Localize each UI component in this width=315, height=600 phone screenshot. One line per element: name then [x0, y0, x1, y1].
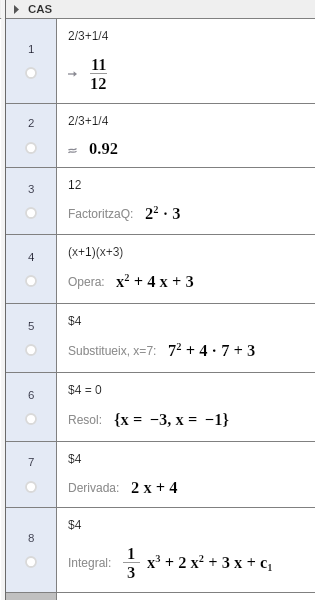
- button[interactable]: 8: [6, 508, 315, 592]
- button[interactable]: 2: [6, 104, 315, 167]
- button[interactable]: 3: [6, 168, 315, 234]
- button[interactable]: 1: [6, 19, 315, 103]
- staticText: CAS: [28, 3, 53, 16]
- button[interactable]: 7: [6, 442, 315, 507]
- staticText: Integral:: [68, 556, 112, 569]
- staticText: 7: [28, 456, 35, 469]
- staticText: $4: [68, 314, 82, 327]
- staticText: 3: [127, 563, 136, 581]
- staticText: 22 · 3: [145, 204, 181, 223]
- staticText: (x+1)(x+3): [68, 245, 124, 258]
- staticText: 3: [28, 183, 35, 196]
- staticText: 5: [28, 320, 35, 333]
- staticText: Resol:: [68, 413, 103, 426]
- button[interactable]: 5: [6, 304, 315, 372]
- staticText: 1: [28, 43, 35, 56]
- staticText: 2/3+1/4: [68, 114, 109, 127]
- staticText: 12: [90, 74, 107, 92]
- staticText: $4: [68, 452, 82, 465]
- staticText: $4: [68, 518, 82, 531]
- staticText: Substitueix, x=7:: [68, 344, 157, 357]
- staticText: Opera:: [68, 275, 105, 288]
- staticText: x2 + 4 x + 3: [116, 272, 194, 291]
- staticText: $4 = 0: [68, 383, 102, 396]
- staticText: 11: [91, 55, 107, 73]
- staticText: 2 x + 4: [131, 478, 178, 496]
- staticText: x3 + 2 x2 + 3 x + c1: [147, 553, 273, 573]
- staticText: 2: [28, 117, 35, 130]
- staticText: FactoritzaQ:: [68, 207, 134, 220]
- other: Expand CAS view: [14, 5, 19, 14]
- staticText: 0.92: [89, 139, 118, 157]
- staticText: 4: [28, 251, 35, 264]
- button[interactable]: Expand CAS view: [6, 0, 315, 18]
- staticText: 6: [28, 389, 35, 402]
- staticText: {x = −3, x = −1}: [114, 410, 229, 428]
- staticText: 1: [127, 544, 136, 562]
- staticText: 2/3+1/4: [68, 29, 109, 42]
- staticText: 12: [68, 178, 82, 191]
- button[interactable]: 4: [6, 235, 315, 303]
- staticText: 72 + 4 · 7 + 3: [168, 341, 256, 360]
- staticText: Derivada:: [68, 481, 120, 494]
- button[interactable]: 6: [6, 373, 315, 441]
- staticText: 8: [28, 532, 35, 545]
